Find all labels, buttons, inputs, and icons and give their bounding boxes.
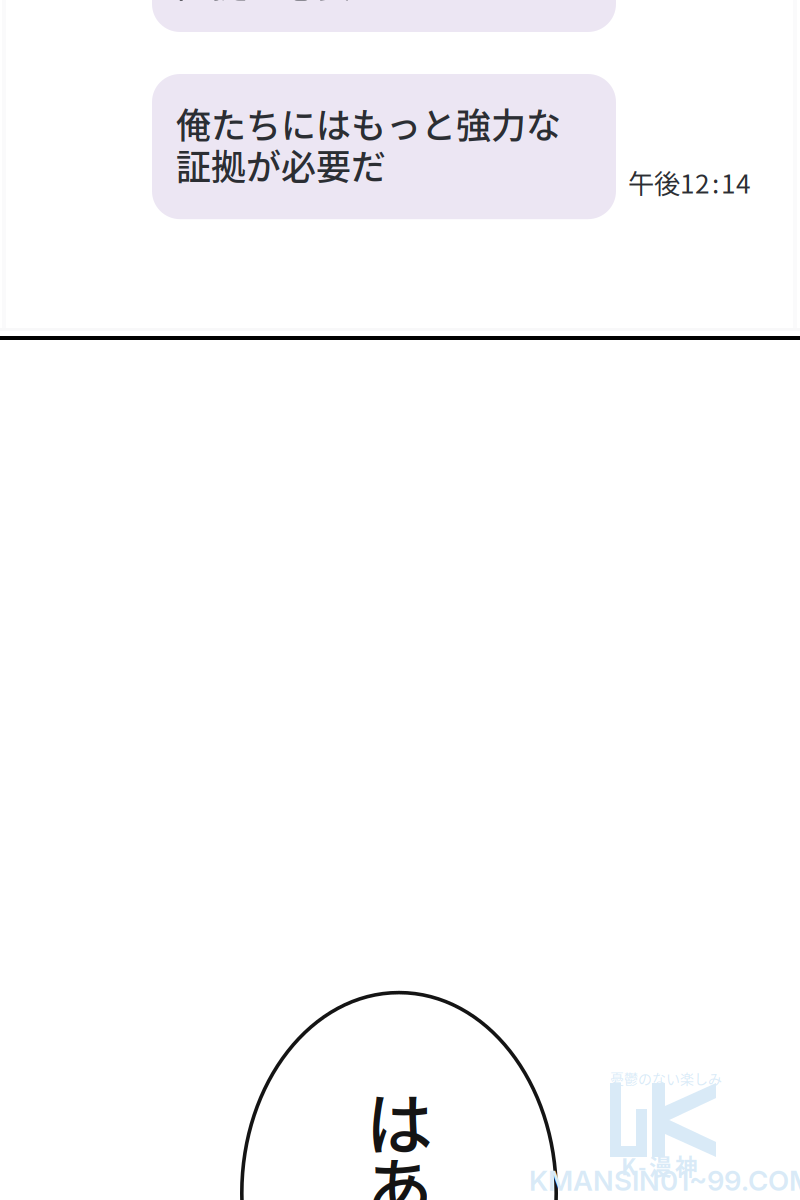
staticText: KMANSIN01~99.COM — [529, 1164, 800, 1198]
staticText: 俺たちにはもっと強力な 証拠が必要だ — [176, 98, 561, 190]
staticText: 午後12 : 14 — [628, 163, 751, 201]
staticText: は — [366, 1072, 433, 1168]
staticText: 証拠が必要だ — [177, 0, 387, 8]
staticText: 憂鬱のない楽しみ — [610, 1068, 722, 1088]
staticText: K-漫神 — [621, 1149, 698, 1182]
staticText: あ — [366, 1136, 433, 1200]
